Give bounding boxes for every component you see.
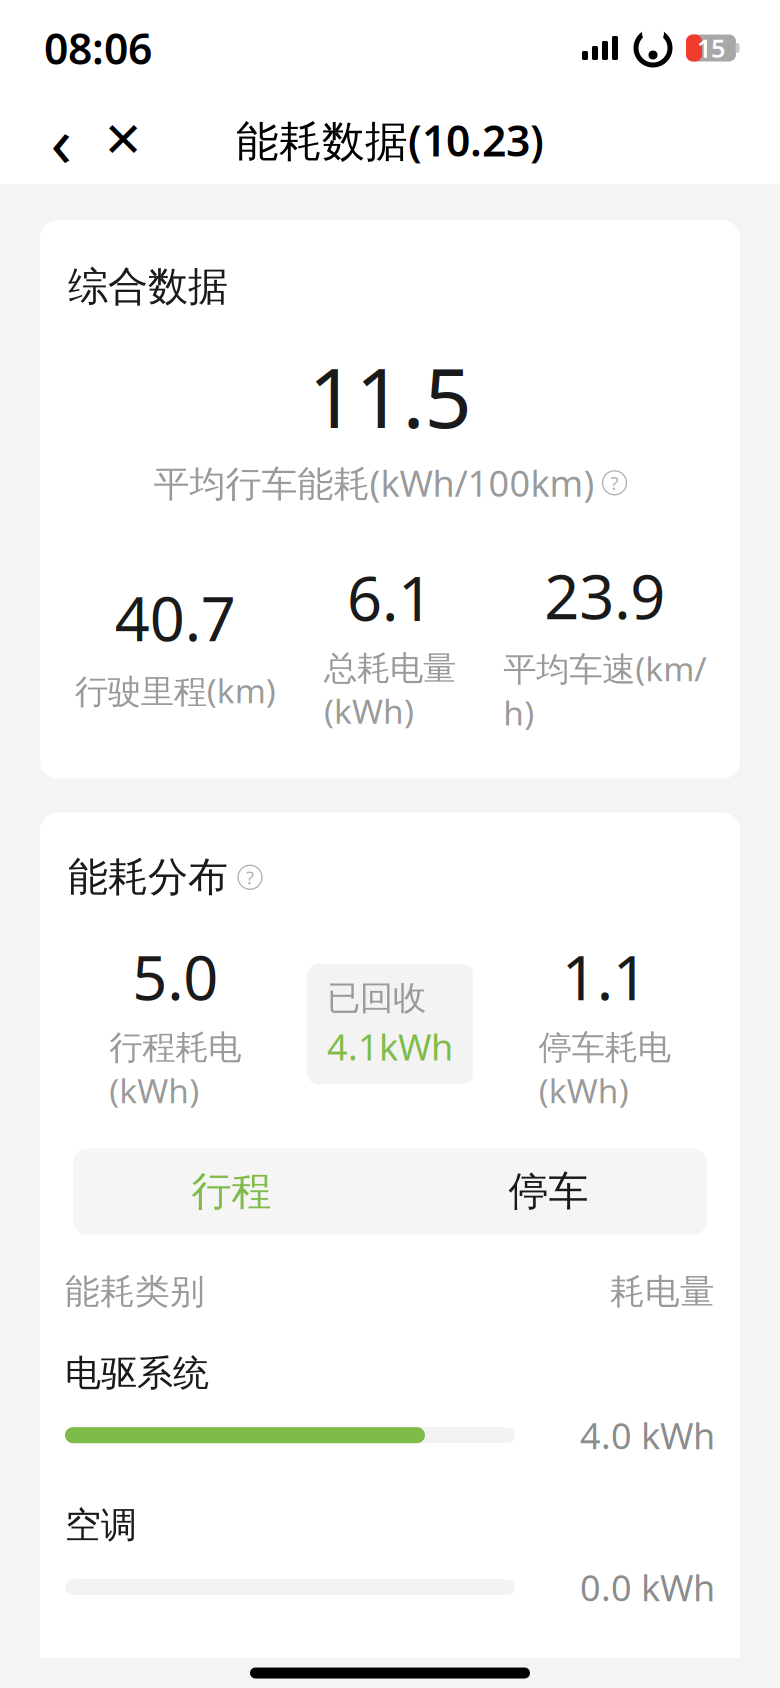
staticText: 23.9 xyxy=(544,555,665,636)
staticText: 4.0 kWh xyxy=(580,1411,715,1459)
staticText: 11.5 xyxy=(308,341,471,451)
staticText: 0.0 kWh xyxy=(580,1563,715,1611)
staticText: 能耗类别 xyxy=(65,1270,205,1313)
staticText: 能耗数据(10.23) xyxy=(236,112,544,168)
staticText: 4.1kWh xyxy=(327,1023,453,1070)
staticText: 平均车速(km/h) xyxy=(503,646,706,735)
staticText: 停车耗电(kWh) xyxy=(539,1027,671,1112)
staticText: 15 xyxy=(697,31,725,65)
staticText: 行程 xyxy=(191,1167,271,1216)
staticText: 耗电量 xyxy=(610,1270,715,1313)
staticText: 空调 xyxy=(65,1503,137,1547)
staticText: 综合数据 xyxy=(68,262,228,311)
staticText: 平均行车能耗(kWh/100km) xyxy=(153,459,594,507)
button[interactable]: 行程 xyxy=(73,1148,390,1234)
staticText: 停车 xyxy=(508,1167,588,1216)
staticText: 总耗电量(kWh) xyxy=(324,648,456,733)
staticText: 行驶里程(km) xyxy=(75,668,276,713)
staticText: 5.0 xyxy=(132,936,218,1017)
staticText: 电驱系统 xyxy=(65,1351,209,1395)
staticText: ? xyxy=(246,865,254,890)
staticText: 能耗分布 xyxy=(68,853,228,902)
button[interactable]: 停车 xyxy=(390,1148,707,1234)
staticText: 行程耗电(kWh) xyxy=(109,1027,241,1112)
staticText: 雨刮 xyxy=(65,1655,137,1688)
staticText: 6.1 xyxy=(347,556,433,638)
staticText: 08:06 xyxy=(44,20,152,76)
staticText: ✕ xyxy=(103,113,143,167)
button[interactable]: Back xyxy=(30,109,92,171)
staticText: 1.1 xyxy=(562,936,648,1017)
button[interactable]: Close xyxy=(92,109,154,171)
staticText: 已回收 xyxy=(327,978,426,1019)
staticText: ? xyxy=(610,470,618,495)
staticText: 40.7 xyxy=(115,577,236,658)
staticText: ‹ xyxy=(50,94,71,186)
